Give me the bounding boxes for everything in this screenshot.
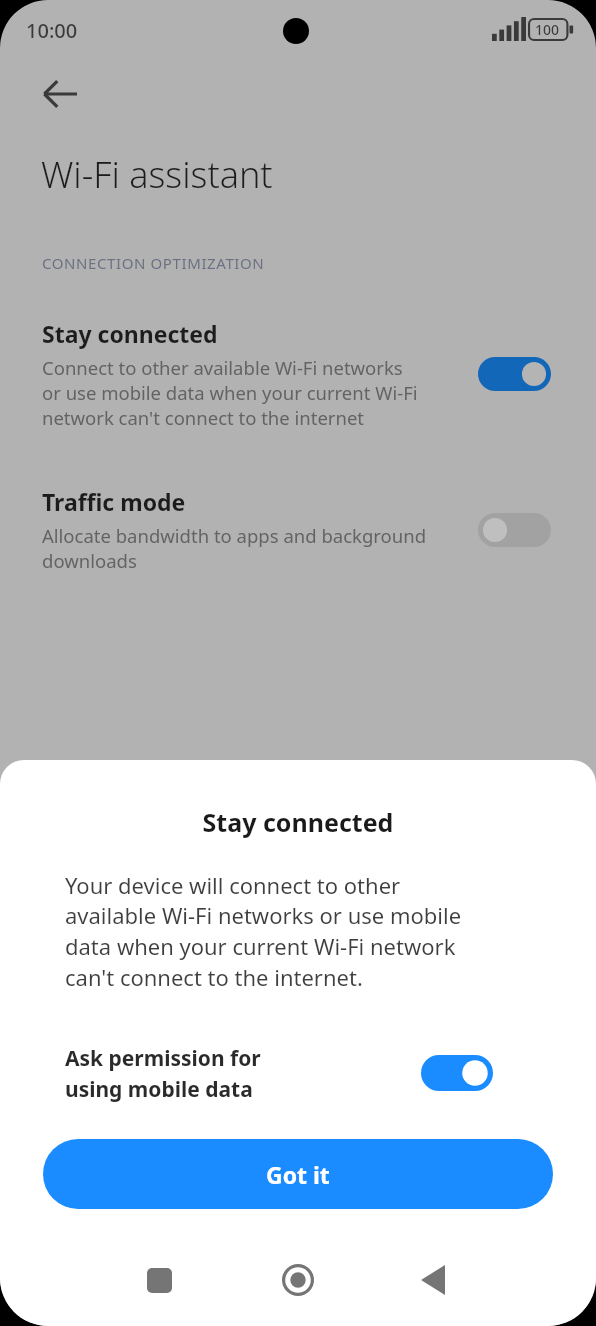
staticText: Allocate bandwidth to apps and backgroun… bbox=[42, 523, 427, 573]
staticText: 10:00 bbox=[26, 17, 78, 44]
staticText: Ask permission for using mobile data bbox=[65, 1044, 261, 1103]
staticText: Got it bbox=[266, 1159, 330, 1190]
button[interactable]: Traffic mode bbox=[0, 472, 596, 577]
button[interactable]: Ask permission, on bbox=[421, 1055, 493, 1091]
staticText: Your device will connect to other availa… bbox=[65, 870, 462, 993]
staticText: Stay connected bbox=[0, 805, 596, 839]
button[interactable]: Stay connected bbox=[0, 304, 596, 434]
button[interactable]: Back bbox=[32, 66, 88, 122]
button[interactable]: Ask permission for using mobile data bbox=[0, 1035, 596, 1115]
button[interactable]: On bbox=[478, 357, 551, 391]
staticText: 100 bbox=[535, 20, 560, 39]
button[interactable]: Recent apps bbox=[127, 1248, 191, 1312]
staticText: CONNECTION OPTIMIZATION bbox=[42, 253, 265, 273]
button[interactable]: Off bbox=[478, 513, 551, 547]
staticText: Wi-Fi assistant bbox=[41, 150, 273, 199]
button[interactable]: Got it bbox=[43, 1139, 553, 1209]
staticText: Connect to other available Wi-Fi network… bbox=[42, 355, 418, 430]
button[interactable]: Back bbox=[401, 1248, 465, 1312]
staticText: Stay connected bbox=[42, 318, 218, 349]
staticText: Traffic mode bbox=[42, 486, 186, 517]
button[interactable]: Home bbox=[266, 1248, 330, 1312]
